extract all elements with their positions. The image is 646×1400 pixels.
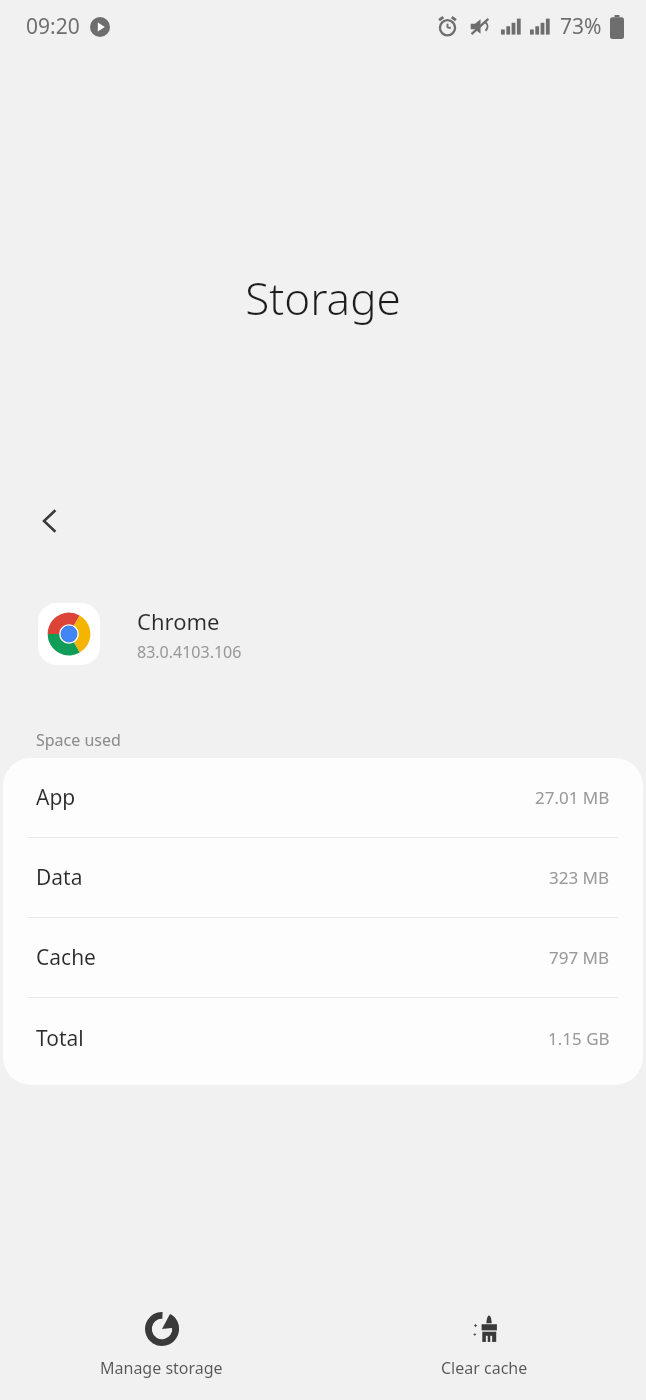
staticText: Manage storage bbox=[100, 1357, 223, 1379]
staticText: Data bbox=[36, 863, 83, 892]
staticText: 83.0.4103.106 bbox=[137, 641, 242, 663]
button[interactable]: Chrome bbox=[0, 592, 646, 676]
button[interactable]: App bbox=[3, 758, 643, 837]
button[interactable]: Cache bbox=[3, 918, 643, 997]
staticText: 27.01 MB bbox=[535, 786, 610, 809]
staticText: Storage bbox=[245, 268, 401, 328]
staticText: 73% bbox=[560, 12, 602, 41]
staticText: Cache bbox=[36, 943, 96, 972]
staticText: 1.15 GB bbox=[548, 1027, 610, 1050]
staticText: Chrome bbox=[137, 606, 220, 636]
button[interactable]: Total bbox=[3, 998, 643, 1078]
button[interactable]: Data bbox=[3, 838, 643, 917]
staticText: 09:20 bbox=[26, 12, 80, 41]
staticText: 323 MB bbox=[549, 866, 610, 889]
button[interactable]: Manage storage bbox=[0, 1290, 323, 1400]
staticText: Space used bbox=[36, 729, 121, 751]
staticText: 797 MB bbox=[549, 946, 610, 969]
button[interactable]: Back bbox=[14, 485, 86, 557]
staticText: App bbox=[36, 783, 76, 812]
staticText: Total bbox=[36, 1024, 84, 1053]
staticText: Clear cache bbox=[441, 1357, 528, 1379]
button[interactable]: Clear cache bbox=[323, 1290, 646, 1400]
